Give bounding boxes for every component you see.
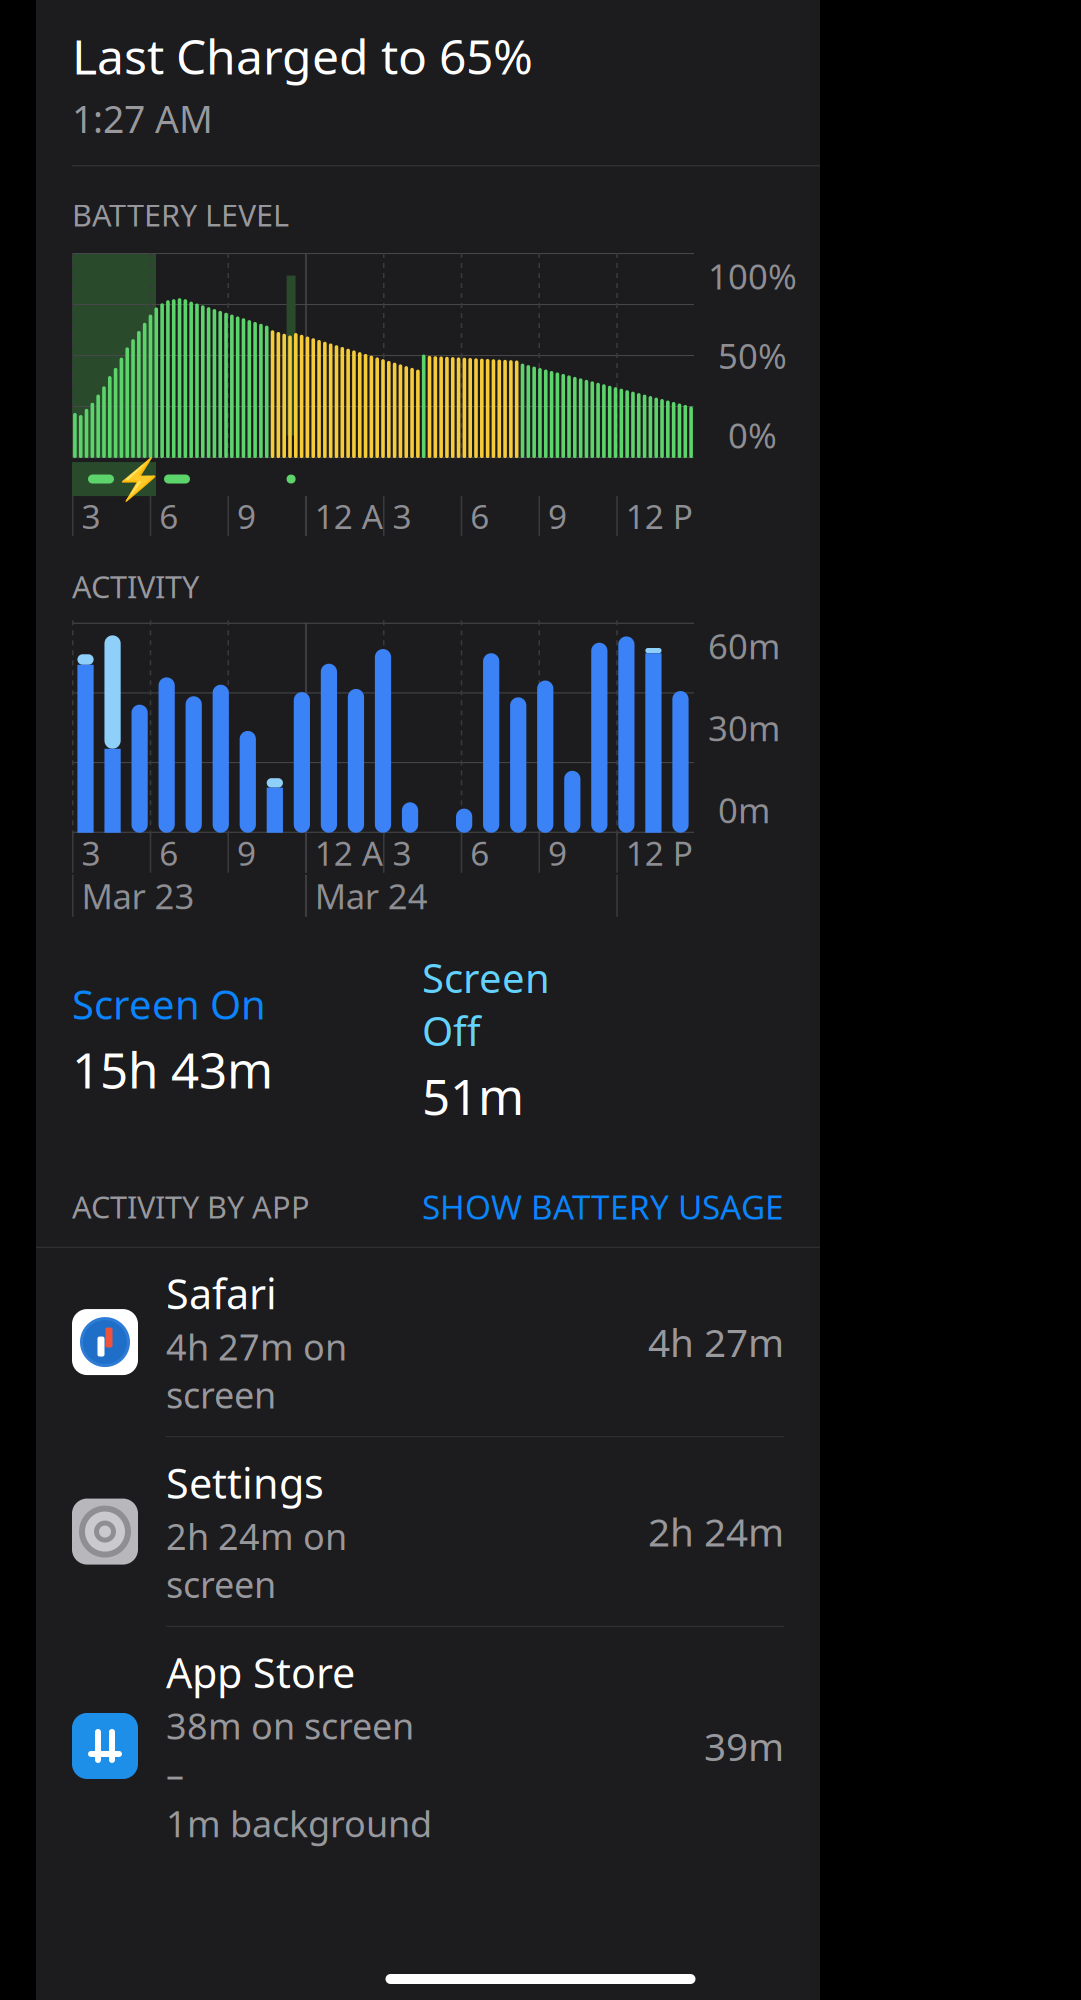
- staticText: 4h 27m on screen: [166, 1323, 347, 1418]
- staticText: 3: [392, 831, 411, 875]
- staticText: BATTERY LEVEL: [72, 194, 289, 235]
- staticText: Last Charged to 65%: [72, 24, 533, 88]
- staticText: 38m on screen –: [166, 1702, 414, 1797]
- staticText: 1:27 AM: [72, 94, 213, 143]
- staticText: Mar 23: [81, 873, 194, 919]
- staticText: 0%: [728, 412, 777, 458]
- staticText: 3: [81, 831, 100, 875]
- staticText: Screen Off: [422, 951, 550, 1057]
- staticText: 9: [237, 494, 256, 538]
- staticText: Mar 24: [315, 873, 428, 919]
- staticText: 12 P: [626, 494, 693, 538]
- staticText: 12 P: [626, 831, 693, 875]
- staticText: 60m: [708, 623, 780, 669]
- button[interactable]: App Store: [36, 1627, 820, 1865]
- staticText: 2h 24m on screen: [166, 1512, 347, 1608]
- staticText: 3: [392, 494, 411, 538]
- staticText: Settings: [166, 1455, 324, 1510]
- staticText: SHOW BATTERY USAGE: [422, 1185, 784, 1229]
- staticText: 9: [548, 831, 567, 875]
- staticText: 6: [159, 494, 178, 538]
- staticText: 6: [470, 831, 489, 875]
- staticText: ⚡: [114, 456, 164, 502]
- staticText: ACTIVITY: [72, 566, 199, 607]
- button[interactable]: Settings: [36, 1437, 820, 1627]
- staticText: 3: [81, 494, 100, 538]
- button[interactable]: SHOW BATTERY USAGE: [422, 1185, 784, 1229]
- staticText: 9: [237, 831, 256, 875]
- staticText: 1m background: [166, 1799, 432, 1847]
- staticText: 51m: [422, 1063, 524, 1128]
- staticText: App Store: [166, 1645, 355, 1700]
- staticText: Safari: [166, 1266, 277, 1321]
- button[interactable]: Safari: [36, 1248, 820, 1437]
- staticText: 100%: [708, 253, 797, 299]
- staticText: 39m: [704, 1720, 784, 1772]
- staticText: Screen On: [72, 977, 266, 1030]
- staticText: 4h 27m: [648, 1316, 784, 1368]
- staticText: 6: [470, 494, 489, 538]
- staticText: 2h 24m: [648, 1506, 784, 1557]
- staticText: 9: [548, 494, 567, 538]
- staticText: 12 A: [315, 831, 383, 875]
- staticText: 12 A: [315, 494, 383, 538]
- staticText: 30m: [708, 705, 780, 751]
- staticText: ACTIVITY BY APP: [72, 1186, 310, 1227]
- staticText: 6: [159, 831, 178, 875]
- staticText: 50%: [718, 332, 787, 378]
- staticText: 15h 43m: [72, 1036, 273, 1102]
- staticText: 0m: [718, 787, 770, 833]
